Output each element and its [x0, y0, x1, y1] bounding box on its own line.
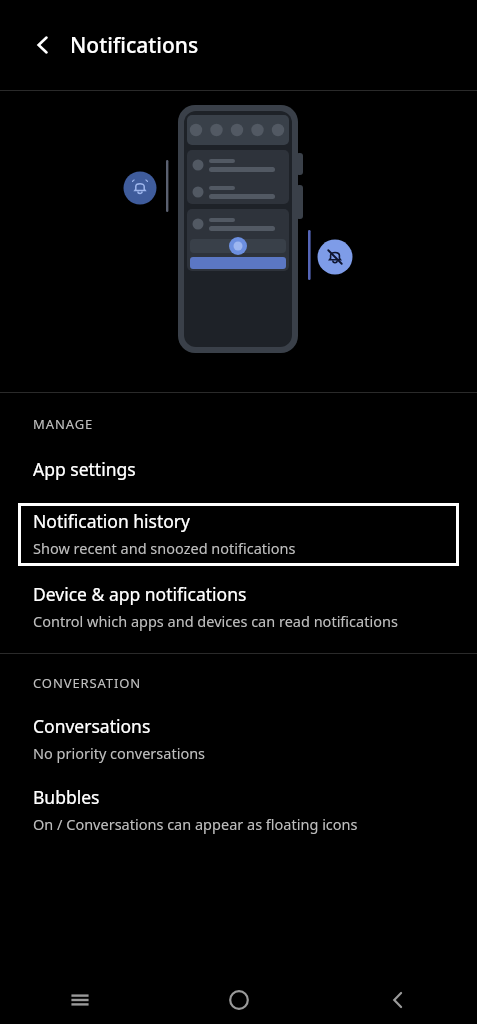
button[interactable]: Notification history: [33, 509, 449, 558]
button[interactable]: Device & app notifications: [33, 582, 449, 631]
staticText: Control which apps and devices can read …: [33, 611, 398, 631]
staticText: On / Conversations can appear as floatin…: [33, 814, 358, 834]
button[interactable]: Back: [22, 24, 64, 66]
staticText: Device & app notifications: [33, 582, 247, 606]
staticText: No priority conversations: [33, 743, 206, 763]
staticText: CONVERSATION: [33, 674, 142, 692]
staticText: Notifications: [70, 31, 199, 60]
button[interactable]: Back: [318, 975, 477, 1024]
button[interactable]: Recent apps: [0, 975, 159, 1024]
staticText: Show recent and snoozed notifications: [33, 538, 296, 558]
staticText: MANAGE: [33, 415, 94, 433]
staticText: App settings: [33, 457, 136, 481]
button[interactable]: App settings: [33, 457, 449, 481]
button[interactable]: Bubbles: [33, 785, 449, 834]
staticText: Bubbles: [33, 785, 100, 809]
staticText: Conversations: [33, 714, 151, 738]
button[interactable]: Home: [159, 975, 318, 1024]
button[interactable]: Conversations: [33, 714, 449, 763]
staticText: Notification history: [33, 509, 191, 533]
